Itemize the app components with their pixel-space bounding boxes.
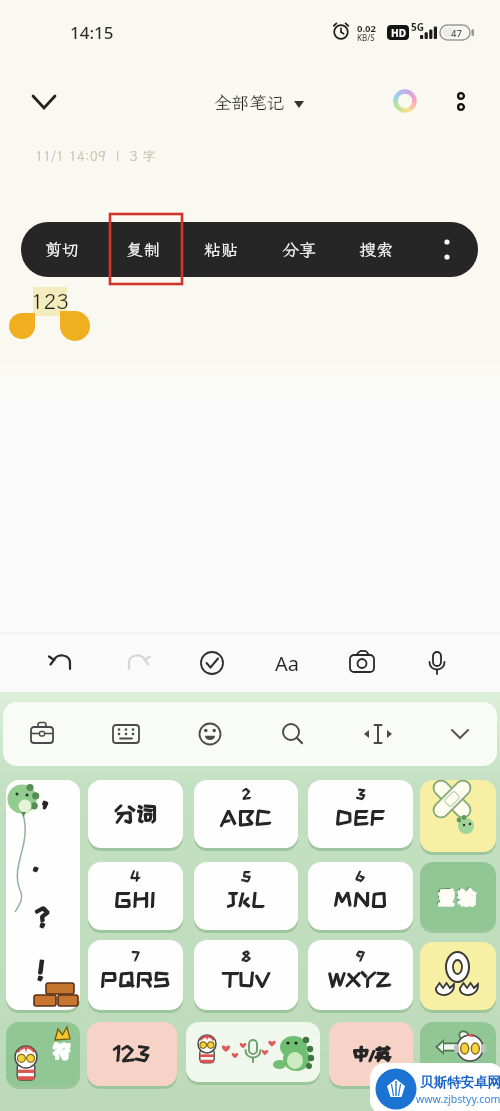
staticText: GHI bbox=[115, 888, 157, 910]
staticText: 剪切 bbox=[45, 238, 79, 260]
staticText: 3 bbox=[356, 787, 365, 801]
staticText: 分词 bbox=[114, 802, 157, 825]
staticText: 分词 bbox=[115, 802, 158, 825]
staticText: 8 bbox=[242, 949, 252, 963]
staticText: 4 bbox=[130, 870, 140, 884]
staticText: 14:15 bbox=[70, 21, 114, 44]
staticText: 。 bbox=[31, 851, 54, 873]
staticText: PQRS bbox=[100, 968, 171, 990]
staticText: ? bbox=[36, 904, 48, 929]
staticText: 重输 bbox=[436, 886, 478, 905]
staticText: DEF bbox=[335, 807, 386, 829]
staticText: DEF bbox=[335, 806, 386, 828]
staticText: 4 bbox=[131, 869, 141, 883]
staticText: 123 bbox=[113, 1043, 150, 1065]
staticText: www.zjbstyy.com bbox=[416, 1092, 500, 1106]
staticText: MNO bbox=[334, 888, 389, 910]
staticText: 分词 bbox=[114, 803, 157, 826]
staticText: ! bbox=[37, 957, 43, 982]
staticText: 贝斯特安卓网 bbox=[420, 1074, 500, 1091]
staticText: 重输 bbox=[437, 888, 479, 907]
staticText: 8 bbox=[241, 950, 251, 964]
staticText: 123 bbox=[114, 1042, 151, 1064]
staticText: 9 bbox=[356, 949, 364, 963]
staticText: 搜索 bbox=[359, 238, 393, 260]
staticText: 3 bbox=[357, 787, 366, 801]
staticText: , bbox=[42, 785, 48, 809]
staticText: 5 bbox=[242, 869, 252, 883]
staticText: 6 bbox=[355, 869, 365, 883]
staticText: 全部笔记 bbox=[214, 91, 284, 114]
staticText: 47 bbox=[451, 27, 462, 40]
staticText: ! bbox=[38, 957, 44, 982]
staticText: JkL bbox=[226, 888, 266, 910]
staticText: 123 bbox=[31, 287, 69, 315]
staticText: GHI bbox=[114, 888, 156, 910]
staticText: WXYZ bbox=[329, 969, 393, 990]
staticText: 复制 bbox=[126, 238, 160, 260]
staticText: MNO bbox=[333, 889, 388, 911]
staticText: 中/英 bbox=[352, 1045, 391, 1063]
staticText: 2 bbox=[243, 787, 252, 801]
staticText: ! bbox=[37, 958, 43, 983]
staticText: 123 bbox=[113, 1042, 150, 1064]
staticText: 2 bbox=[242, 787, 251, 801]
staticText: 8 bbox=[241, 949, 251, 963]
staticText: 中/英 bbox=[353, 1044, 392, 1062]
staticText: 中/英 bbox=[352, 1044, 391, 1062]
staticText: 7 bbox=[132, 949, 139, 963]
staticText: HD bbox=[391, 26, 406, 40]
staticText: ABC bbox=[219, 807, 273, 829]
staticText: PQRS bbox=[100, 969, 171, 991]
staticText: Aa bbox=[275, 650, 299, 677]
staticText: 粘贴 bbox=[204, 238, 238, 260]
staticText: ABC bbox=[220, 806, 274, 828]
staticText: 7 bbox=[133, 949, 140, 963]
staticText: ? bbox=[37, 904, 49, 929]
staticText: 6 bbox=[355, 870, 365, 884]
staticText: TUV bbox=[223, 969, 270, 991]
staticText: WXYZ bbox=[328, 970, 392, 991]
staticText: 符 bbox=[52, 1040, 71, 1060]
staticText: JkL bbox=[226, 889, 266, 911]
staticText: 0.02 bbox=[357, 22, 376, 35]
staticText: GHI bbox=[114, 889, 156, 911]
staticText: 3 bbox=[356, 788, 365, 802]
staticText: 9 bbox=[357, 949, 365, 963]
staticText: ABC bbox=[219, 806, 273, 828]
staticText: 符 bbox=[53, 1040, 72, 1060]
staticText: MNO bbox=[333, 888, 388, 910]
staticText: 9 bbox=[356, 950, 364, 964]
staticText: DEF bbox=[336, 806, 387, 828]
staticText: 符 bbox=[52, 1041, 71, 1061]
staticText: 5G bbox=[411, 20, 424, 34]
staticText: JkL bbox=[227, 888, 267, 910]
staticText: 。 bbox=[31, 852, 54, 874]
staticText: 重输 bbox=[438, 887, 480, 906]
staticText: TUV bbox=[223, 968, 270, 990]
staticText: PQRS bbox=[101, 968, 172, 990]
staticText: ? bbox=[36, 905, 48, 930]
staticText: WXYZ bbox=[328, 969, 392, 990]
staticText: 。 bbox=[32, 851, 55, 873]
staticText: 2 bbox=[242, 788, 251, 802]
staticText: 重输 bbox=[437, 887, 479, 906]
staticText: 4 bbox=[130, 869, 140, 883]
staticText: 11/1 14:09 | 3 字 bbox=[35, 147, 156, 165]
staticText: TUV bbox=[224, 968, 271, 990]
staticText: 5 bbox=[241, 869, 251, 883]
staticText: KB/S bbox=[357, 32, 375, 43]
staticText: , bbox=[42, 784, 48, 808]
staticText: , bbox=[43, 784, 49, 808]
staticText: 6 bbox=[356, 869, 366, 883]
staticText: 分享 bbox=[282, 238, 316, 260]
staticText: 7 bbox=[132, 950, 139, 964]
staticText: 5 bbox=[241, 870, 251, 884]
